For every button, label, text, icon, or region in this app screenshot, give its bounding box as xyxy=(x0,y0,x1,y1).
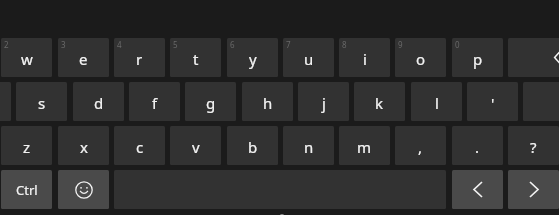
staticText: u xyxy=(304,49,314,69)
button[interactable]: p xyxy=(452,38,503,77)
staticText: s xyxy=(38,93,46,113)
staticText: f xyxy=(152,93,158,113)
staticText: 2 xyxy=(4,39,9,50)
button[interactable]: b xyxy=(227,126,278,165)
button[interactable]: o xyxy=(395,38,446,77)
staticText: 9 xyxy=(398,39,403,50)
staticText: j xyxy=(322,93,326,113)
staticText: v xyxy=(192,137,200,157)
staticText: w xyxy=(21,49,33,69)
button[interactable]: t xyxy=(170,38,221,77)
staticText: 8 xyxy=(342,39,347,50)
staticText: p xyxy=(473,49,483,69)
staticText: e xyxy=(79,49,88,69)
button[interactable]: n xyxy=(283,126,334,165)
button[interactable]: Emoji xyxy=(58,170,109,209)
staticText: x xyxy=(80,137,88,157)
staticText: z xyxy=(23,137,31,157)
button[interactable]: ? xyxy=(508,126,559,165)
button[interactable]: u xyxy=(283,38,334,77)
button[interactable]: ' xyxy=(467,82,518,121)
staticText: 0 xyxy=(455,39,460,50)
staticText: i xyxy=(363,49,367,69)
staticText: l xyxy=(435,93,439,113)
button[interactable]: Backspace xyxy=(508,38,559,77)
button[interactable]: r xyxy=(114,38,165,77)
staticText: 7 xyxy=(286,39,291,50)
button[interactable]: m xyxy=(339,126,390,165)
staticText: , xyxy=(418,137,423,157)
staticText: ' xyxy=(491,93,495,113)
staticText: t xyxy=(193,49,199,69)
button[interactable]: c xyxy=(114,126,165,165)
button[interactable]: Control xyxy=(1,170,52,209)
staticText: y xyxy=(249,49,257,69)
staticText: 4 xyxy=(117,39,122,50)
button[interactable]: g xyxy=(185,82,236,121)
staticText: 5 xyxy=(173,39,178,50)
button[interactable]: Previous xyxy=(452,170,503,209)
button[interactable]: j xyxy=(298,82,349,121)
button[interactable]: s xyxy=(16,82,67,121)
button[interactable]: f xyxy=(129,82,180,121)
staticText: ? xyxy=(530,137,537,157)
button[interactable]: , xyxy=(395,126,446,165)
button[interactable]: z xyxy=(1,126,52,165)
button[interactable]: l xyxy=(411,82,462,121)
button[interactable]: y xyxy=(227,38,278,77)
button[interactable]: d xyxy=(73,82,124,121)
staticText: Ctrl xyxy=(16,181,38,199)
button[interactable]: . xyxy=(452,126,503,165)
staticText: m xyxy=(357,137,372,157)
button[interactable]: x xyxy=(58,126,109,165)
button[interactable]: i xyxy=(339,38,390,77)
staticText: k xyxy=(375,93,384,113)
button[interactable]: e xyxy=(58,38,109,77)
staticText: . xyxy=(475,137,480,157)
staticText: c xyxy=(136,137,144,157)
staticText: d xyxy=(94,93,104,113)
button[interactable]: w xyxy=(1,38,52,77)
staticText: 6 xyxy=(230,39,235,50)
button[interactable]: k xyxy=(354,82,405,121)
staticText: r xyxy=(136,49,143,69)
staticText: b xyxy=(248,137,258,157)
button[interactable]: Next xyxy=(508,170,559,209)
button[interactable]: v xyxy=(170,126,221,165)
staticText: 3 xyxy=(61,39,66,50)
staticText: g xyxy=(206,93,216,113)
staticText: h xyxy=(263,93,273,113)
button[interactable]: h xyxy=(242,82,293,121)
staticText: n xyxy=(304,137,314,157)
staticText: o xyxy=(416,49,426,69)
